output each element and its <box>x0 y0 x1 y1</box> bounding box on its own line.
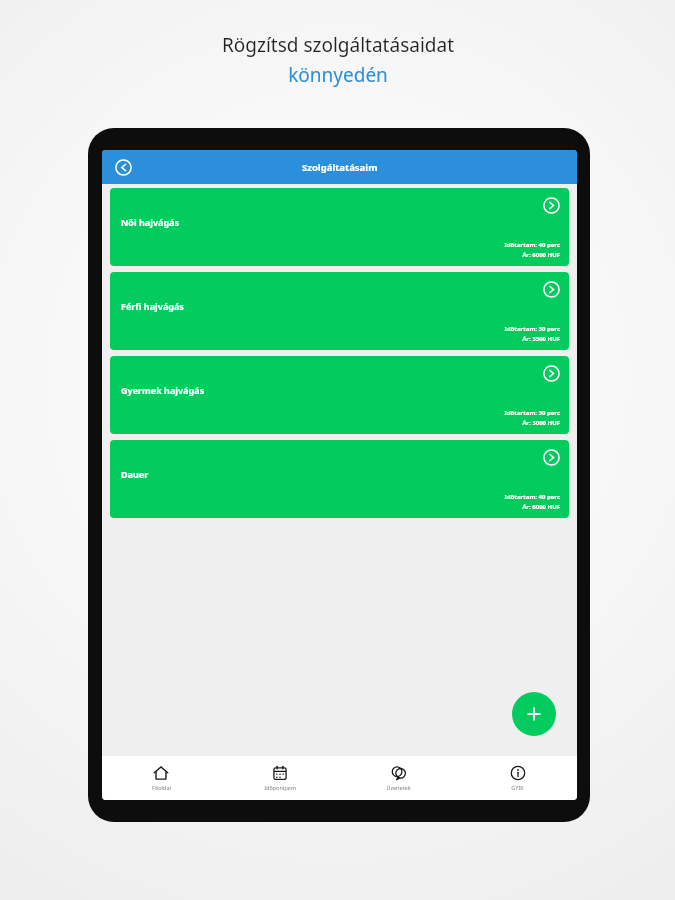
staticText: Gyermek hajvágás <box>121 384 205 396</box>
staticText: Időtartam: 40 perc <box>504 493 560 501</box>
staticText: Üzenetek <box>386 784 411 791</box>
button[interactable]: Időpontjaim <box>220 756 339 800</box>
button[interactable]: GYIK <box>458 756 577 800</box>
button[interactable]: Back <box>110 154 136 180</box>
button[interactable]: Add service <box>512 692 556 736</box>
button[interactable]: Gyermek hajvágás <box>110 356 569 434</box>
staticText: Időtartam: 30 perc <box>504 325 560 333</box>
button[interactable]: Üzenetek <box>339 756 458 800</box>
staticText: Rögzítsd szolgáltatásaidat <box>222 32 454 58</box>
staticText: Ár: 3000 HUF <box>522 419 560 427</box>
staticText: Szolgáltatásaim <box>302 161 378 174</box>
staticText: könnyedén <box>288 62 388 88</box>
button[interactable]: Főoldal <box>102 756 220 800</box>
staticText: Dauer <box>121 468 149 480</box>
staticText: Ár: 6000 HUF <box>522 251 560 259</box>
staticText: Ár: 3500 HUF <box>522 335 560 343</box>
staticText: Időpontjaim <box>264 784 296 791</box>
button[interactable]: Férfi hajvágás <box>110 272 569 350</box>
staticText: Női hajvágás <box>121 216 180 228</box>
button[interactable]: Női hajvágás <box>110 188 569 266</box>
staticText: Időtartam: 30 perc <box>504 409 560 417</box>
staticText: GYIK <box>511 784 524 791</box>
staticText: Időtartam: 40 perc <box>504 241 560 249</box>
staticText: Ár: 6000 HUF <box>522 503 560 511</box>
staticText: Főoldal <box>152 784 171 791</box>
staticText: Férfi hajvágás <box>121 300 184 312</box>
button[interactable]: Dauer <box>110 440 569 518</box>
